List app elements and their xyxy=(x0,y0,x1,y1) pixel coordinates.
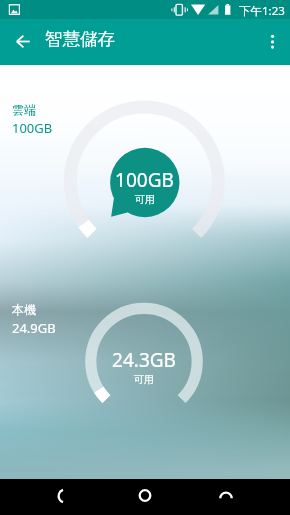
button[interactable]: Back xyxy=(45,481,85,513)
staticText: 24.9GB xyxy=(12,319,56,337)
staticText: 可用 xyxy=(134,373,154,386)
button[interactable]: Home xyxy=(125,481,165,513)
staticText: 雲端 xyxy=(12,102,36,117)
button[interactable]: Back xyxy=(4,24,40,60)
staticText: 下午1:23 xyxy=(239,3,285,19)
staticText: 100GB xyxy=(115,167,174,193)
staticText: 24.3GB xyxy=(112,347,176,373)
button[interactable]: Recent apps xyxy=(206,481,246,513)
staticText: 智慧儲存 xyxy=(45,28,115,50)
button[interactable]: More options xyxy=(257,24,289,56)
staticText: 可用 xyxy=(135,193,155,206)
staticText: 100GB xyxy=(12,119,53,137)
staticText: 本機 xyxy=(12,302,36,317)
